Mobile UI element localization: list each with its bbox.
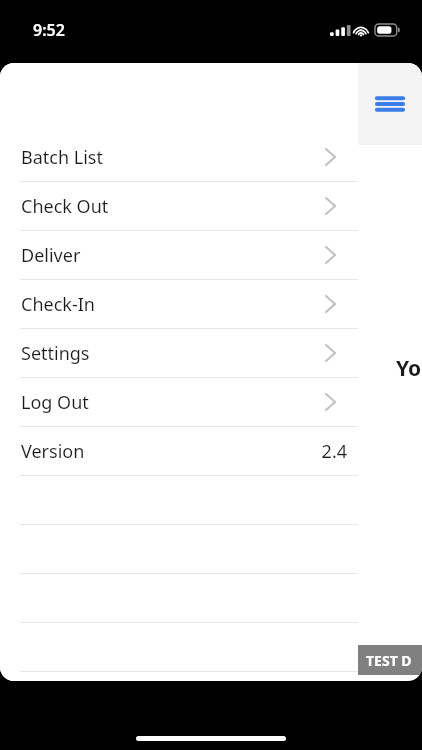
staticText: Check-In (21, 292, 95, 317)
staticText: Log Out (21, 390, 89, 415)
button[interactable]: Deliver (0, 231, 358, 279)
staticText: TEST D (366, 651, 412, 670)
button[interactable]: Open navigation menu (358, 63, 422, 145)
staticText: Yo (396, 354, 422, 383)
staticText: 2.4 (321, 439, 347, 464)
staticText: Batch List (21, 145, 103, 170)
staticText: 9:52 (33, 19, 65, 41)
staticText: Deliver (21, 243, 81, 268)
button[interactable]: Version (0, 427, 358, 475)
button[interactable]: TEST D (358, 645, 422, 675)
staticText: Check Out (21, 194, 109, 219)
button[interactable]: Batch List (0, 133, 358, 181)
button[interactable]: Check Out (0, 182, 358, 230)
staticText: Settings (21, 341, 90, 366)
button[interactable]: Settings (0, 329, 358, 377)
staticText: Version (21, 439, 85, 464)
button[interactable]: Check-In (0, 280, 358, 328)
button[interactable]: Log Out (0, 378, 358, 426)
